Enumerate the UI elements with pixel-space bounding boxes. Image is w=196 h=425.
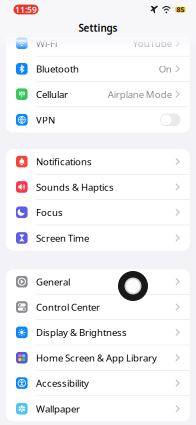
staticText: Airplane Mode <box>108 88 172 101</box>
staticText: Wi-Fi <box>36 37 57 50</box>
button[interactable]: Control Center <box>6 295 190 320</box>
button[interactable]: Wallpaper <box>6 396 190 421</box>
button[interactable]: Focus <box>6 200 190 225</box>
staticText: Control Center <box>36 300 100 314</box>
staticText: VPN <box>36 113 55 126</box>
button[interactable]: Cellular <box>6 82 190 107</box>
button[interactable]: Settings <box>0 19 196 37</box>
button[interactable]: General <box>6 269 190 295</box>
staticText: Screen Time <box>36 231 89 244</box>
staticText: Accessibility <box>36 376 89 390</box>
staticText: Display & Brightness <box>36 326 127 339</box>
button[interactable]: VPN <box>6 107 190 133</box>
staticText: YouTube <box>133 37 172 50</box>
staticText: Focus <box>36 206 63 219</box>
button[interactable]: Display & Brightness <box>6 320 190 345</box>
button[interactable]: Bluetooth <box>6 56 190 82</box>
staticText: Sounds & Haptics <box>36 180 114 193</box>
staticText: Settings <box>78 21 117 35</box>
button[interactable]: Accessibility <box>6 371 190 396</box>
staticText: 11:59 <box>15 4 37 15</box>
staticText: Notifications <box>36 155 92 168</box>
button[interactable]: Sounds & Haptics <box>6 174 190 200</box>
button[interactable]: Screen Time <box>6 225 190 251</box>
staticText: 85 <box>176 5 184 14</box>
staticText: Cellular <box>36 88 68 101</box>
staticText: General <box>36 275 70 288</box>
staticText: Bluetooth <box>36 62 79 75</box>
button[interactable]: Wi-Fi <box>6 30 190 56</box>
button[interactable]: Notifications <box>6 149 190 175</box>
button[interactable]: Home Screen & App Library <box>6 345 190 371</box>
staticText: Wallpaper <box>36 402 80 415</box>
staticText: On <box>159 62 172 75</box>
staticText: Home Screen & App Library <box>36 351 157 364</box>
